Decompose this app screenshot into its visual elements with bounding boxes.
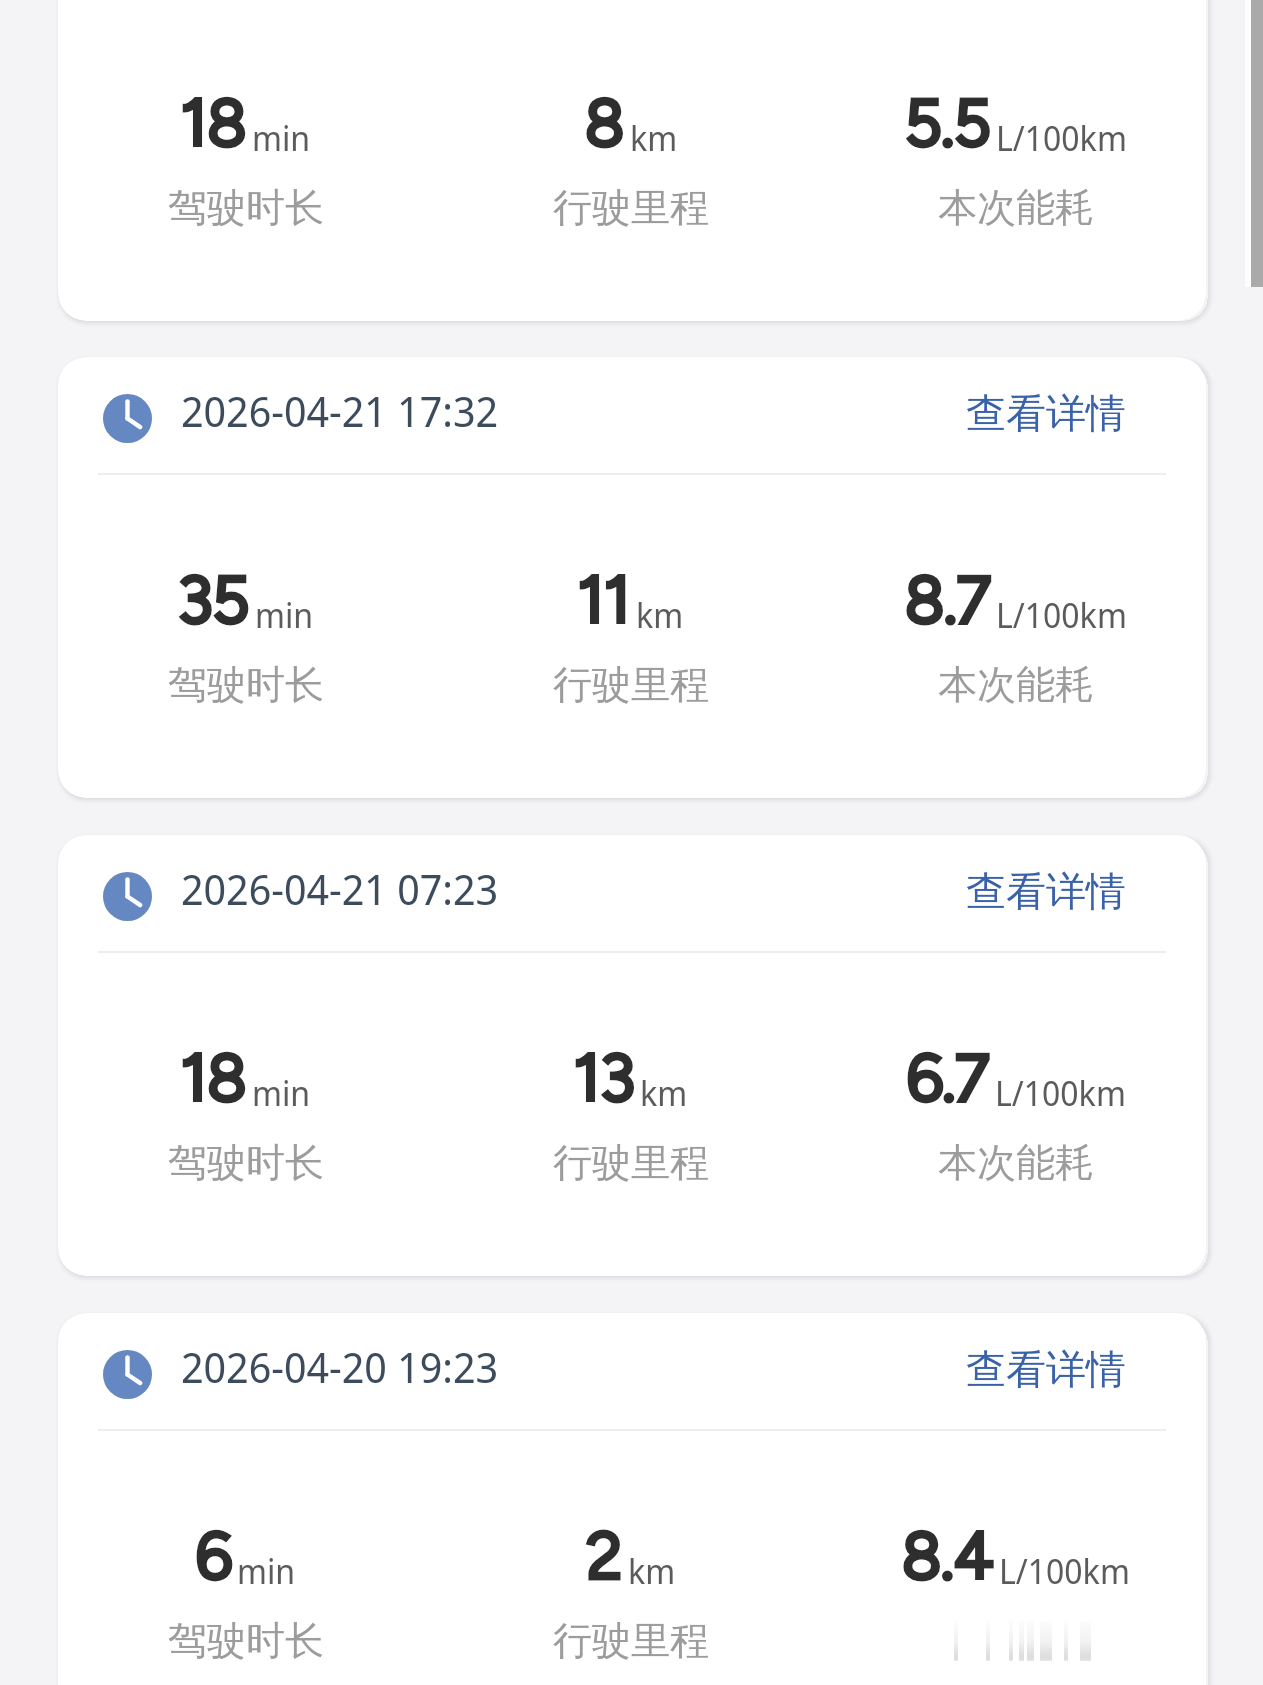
staticText: 6.7 [907, 1039, 990, 1116]
staticText: km [630, 115, 678, 161]
staticText: 35 [178, 561, 250, 638]
button[interactable]: 查看详情 [952, 378, 1140, 448]
staticText: 6.7 [907, 1039, 990, 1116]
staticText: 18 [181, 84, 247, 161]
staticText: 2 [587, 1517, 623, 1594]
staticText: min [252, 1070, 311, 1116]
staticText: 6 [196, 1517, 232, 1594]
staticText: L/100km [999, 1548, 1130, 1594]
staticText: 8 [585, 84, 625, 161]
staticText: 2026-04-21 17:32 [181, 382, 499, 439]
staticText: km [640, 1070, 688, 1116]
staticText: 8 [585, 84, 625, 161]
staticText: 行驶里程 [553, 183, 709, 232]
staticText: 2026-04-21 07:23 [181, 860, 499, 917]
staticText: 18 [181, 84, 247, 161]
staticText: 6 [196, 1517, 232, 1594]
staticText: 8.7 [905, 561, 991, 638]
staticText: 本次能耗 [938, 1138, 1094, 1187]
button[interactable]: Trip time [58, 835, 1206, 1276]
staticText: min [252, 115, 311, 161]
staticText: 18 [181, 1039, 247, 1116]
button[interactable]: Trip time [58, 0, 1206, 321]
staticText: 行驶里程 [553, 1616, 709, 1665]
staticText: 行驶里程 [553, 1138, 709, 1187]
button[interactable]: 查看详情 [952, 856, 1140, 926]
button[interactable]: 查看详情 [952, 1334, 1140, 1404]
staticText: 13 [574, 1039, 635, 1116]
staticText: 2026-04-20 19:23 [181, 1338, 499, 1395]
staticText: 驾驶时长 [168, 1138, 324, 1187]
staticText: 驾驶时长 [168, 660, 324, 709]
staticText: 本次能耗 [938, 183, 1094, 232]
staticText: km [636, 592, 684, 638]
staticText: 8.4 [902, 1517, 994, 1594]
staticText: 5.5 [905, 84, 991, 161]
staticText: 本次能耗 [938, 660, 1094, 709]
staticText: 查看详情 [966, 388, 1126, 438]
staticText: min [237, 1548, 296, 1594]
staticText: 2 [587, 1517, 623, 1594]
button[interactable]: Trip time [58, 357, 1206, 798]
staticText: 查看详情 [966, 1344, 1126, 1394]
staticText: 行驶里程 [553, 660, 709, 709]
staticText: 查看详情 [966, 866, 1126, 916]
staticText: 驾驶时长 [168, 1616, 324, 1665]
staticText: min [255, 592, 314, 638]
staticText: 11 [578, 561, 631, 638]
staticText: 5.5 [905, 84, 991, 161]
other: Trip time [103, 1350, 152, 1399]
staticText: 驾驶时长 [168, 183, 324, 232]
staticText: 8.7 [905, 561, 991, 638]
staticText: 13 [574, 1039, 635, 1116]
other: Trip time [103, 394, 152, 443]
staticText: L/100km [996, 592, 1127, 638]
staticText: 8.4 [902, 1517, 994, 1594]
staticText: 35 [178, 561, 250, 638]
other: Trip time [103, 872, 152, 921]
staticText: L/100km [995, 1070, 1126, 1116]
staticText: 18 [181, 1039, 247, 1116]
staticText: km [628, 1548, 676, 1594]
staticText: 11 [578, 561, 631, 638]
staticText: L/100km [996, 115, 1127, 161]
button[interactable]: Trip time [58, 1313, 1206, 1685]
